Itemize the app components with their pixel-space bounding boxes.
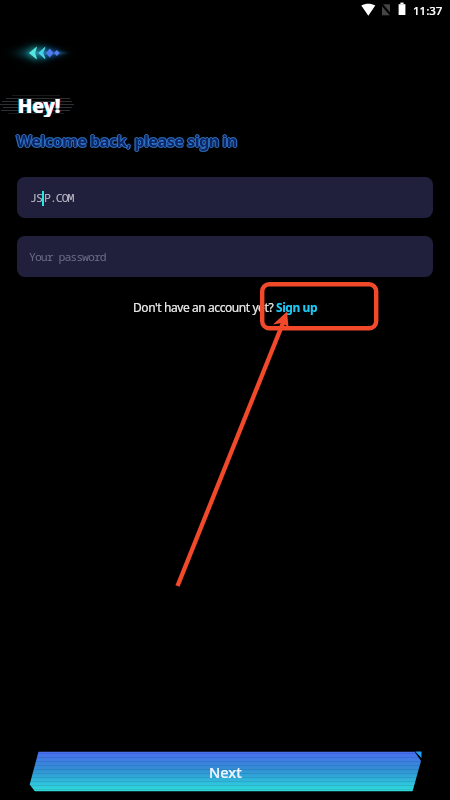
staticText: Welcome back, please sign in xyxy=(17,130,238,152)
button[interactable]: Next xyxy=(30,751,420,792)
staticText: Hey! xyxy=(17,93,60,117)
staticText: Your password xyxy=(29,249,106,265)
staticText: P.COM xyxy=(44,190,74,206)
staticText: Next xyxy=(209,762,242,782)
staticText: Welcome back, please sign in xyxy=(16,130,237,152)
staticText: Welcome back, please sign in xyxy=(15,130,236,152)
button[interactable]: Back xyxy=(6,36,74,70)
staticText: Welcome back, please sign in xyxy=(16,131,237,153)
button[interactable]: JS xyxy=(17,177,433,218)
staticText: Hey! xyxy=(18,93,61,117)
staticText: Welcome back, please sign in xyxy=(16,129,237,151)
staticText: Don't have an account yet? xyxy=(133,299,276,315)
staticText: Hey! xyxy=(19,93,62,117)
staticText: 11:37 xyxy=(413,3,443,19)
button[interactable]: Your password xyxy=(17,236,433,277)
button[interactable]: Don't have an account yet? xyxy=(133,299,318,315)
staticText: Sign up xyxy=(276,299,318,315)
staticText: JS xyxy=(30,190,42,206)
